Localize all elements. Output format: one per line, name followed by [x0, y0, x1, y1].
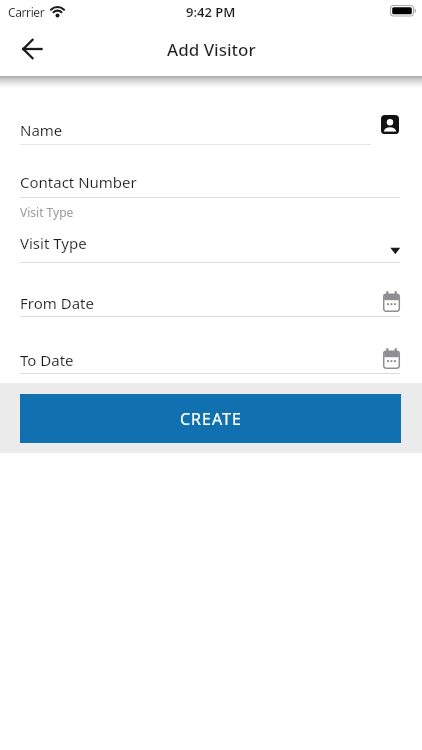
staticText: From Date: [20, 293, 94, 313]
staticText: 9:42 PM: [186, 3, 236, 21]
staticText: Name: [20, 120, 63, 140]
staticText: Carrier: [8, 4, 45, 20]
button[interactable]: [8, 25, 56, 73]
staticText: Contact Number: [20, 172, 137, 192]
staticText: Visit Type: [20, 204, 74, 220]
staticText: Visit Type: [20, 233, 87, 253]
button[interactable]: Contact Number: [0, 168, 422, 199]
staticText: CREATE: [180, 408, 242, 430]
button[interactable]: To Date: [0, 344, 422, 373]
button[interactable]: From Date: [0, 287, 422, 316]
button[interactable]: Visit Type: [0, 226, 422, 263]
button[interactable]: CREATE: [20, 394, 401, 443]
button[interactable]: Name: [0, 112, 422, 146]
staticText: Add Visitor: [167, 38, 256, 61]
staticText: To Date: [20, 350, 74, 370]
